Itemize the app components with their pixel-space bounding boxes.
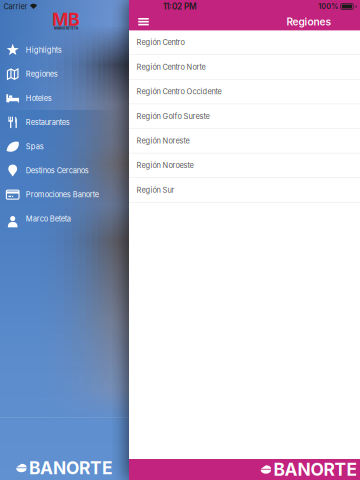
button[interactable]: Spas bbox=[0, 134, 129, 158]
staticText: BANORTE bbox=[273, 459, 357, 480]
button[interactable]: Promociones Banorte bbox=[0, 183, 129, 207]
button[interactable]: Marco Beteta bbox=[0, 207, 129, 231]
staticText: Carrier bbox=[3, 2, 27, 11]
staticText: Región Sur bbox=[137, 185, 175, 194]
staticText: Promociones Banorte bbox=[26, 190, 99, 199]
staticText: Región Noroeste bbox=[137, 161, 194, 170]
button[interactable]: Región Sur bbox=[129, 178, 360, 203]
staticText: Restaurantes bbox=[26, 118, 70, 127]
staticText: Región Golfo Sureste bbox=[137, 112, 210, 121]
button[interactable]: Highlights bbox=[0, 38, 129, 62]
button[interactable]: Destinos Cercanos bbox=[0, 158, 129, 183]
button[interactable]: Regiones bbox=[0, 62, 129, 86]
staticText: Región Centro bbox=[137, 38, 185, 47]
button[interactable]: Hoteles bbox=[0, 86, 129, 110]
staticText: Spas bbox=[26, 142, 44, 151]
staticText: Destinos Cercanos bbox=[26, 166, 89, 175]
button[interactable]: Menu bbox=[133, 13, 154, 30]
staticText: MB bbox=[52, 9, 80, 30]
button[interactable]: Región Centro bbox=[129, 30, 360, 55]
button[interactable]: Región Golfo Sureste bbox=[129, 104, 360, 129]
button[interactable]: Región Noreste bbox=[129, 129, 360, 153]
staticText: 11:02 PM bbox=[163, 1, 197, 11]
staticText: Regiones bbox=[286, 16, 331, 28]
button[interactable]: Región Centro Occidente bbox=[129, 80, 360, 104]
button[interactable]: Restaurantes bbox=[0, 110, 129, 134]
staticText: Marco Beteta bbox=[26, 214, 71, 223]
button[interactable]: Región Centro Norte bbox=[129, 55, 360, 80]
staticText: BANORTE bbox=[29, 457, 113, 478]
staticText: MARCO BETETA bbox=[54, 26, 78, 30]
staticText: Hoteles bbox=[26, 94, 52, 103]
staticText: Región Centro Occidente bbox=[137, 87, 222, 96]
staticText: 100% bbox=[318, 2, 338, 11]
staticText: Región Centro Norte bbox=[137, 62, 206, 71]
staticText: Regiones bbox=[26, 70, 58, 79]
button[interactable]: Región Noroeste bbox=[129, 153, 360, 178]
staticText: Highlights bbox=[26, 45, 62, 54]
staticText: Región Noreste bbox=[137, 136, 190, 145]
